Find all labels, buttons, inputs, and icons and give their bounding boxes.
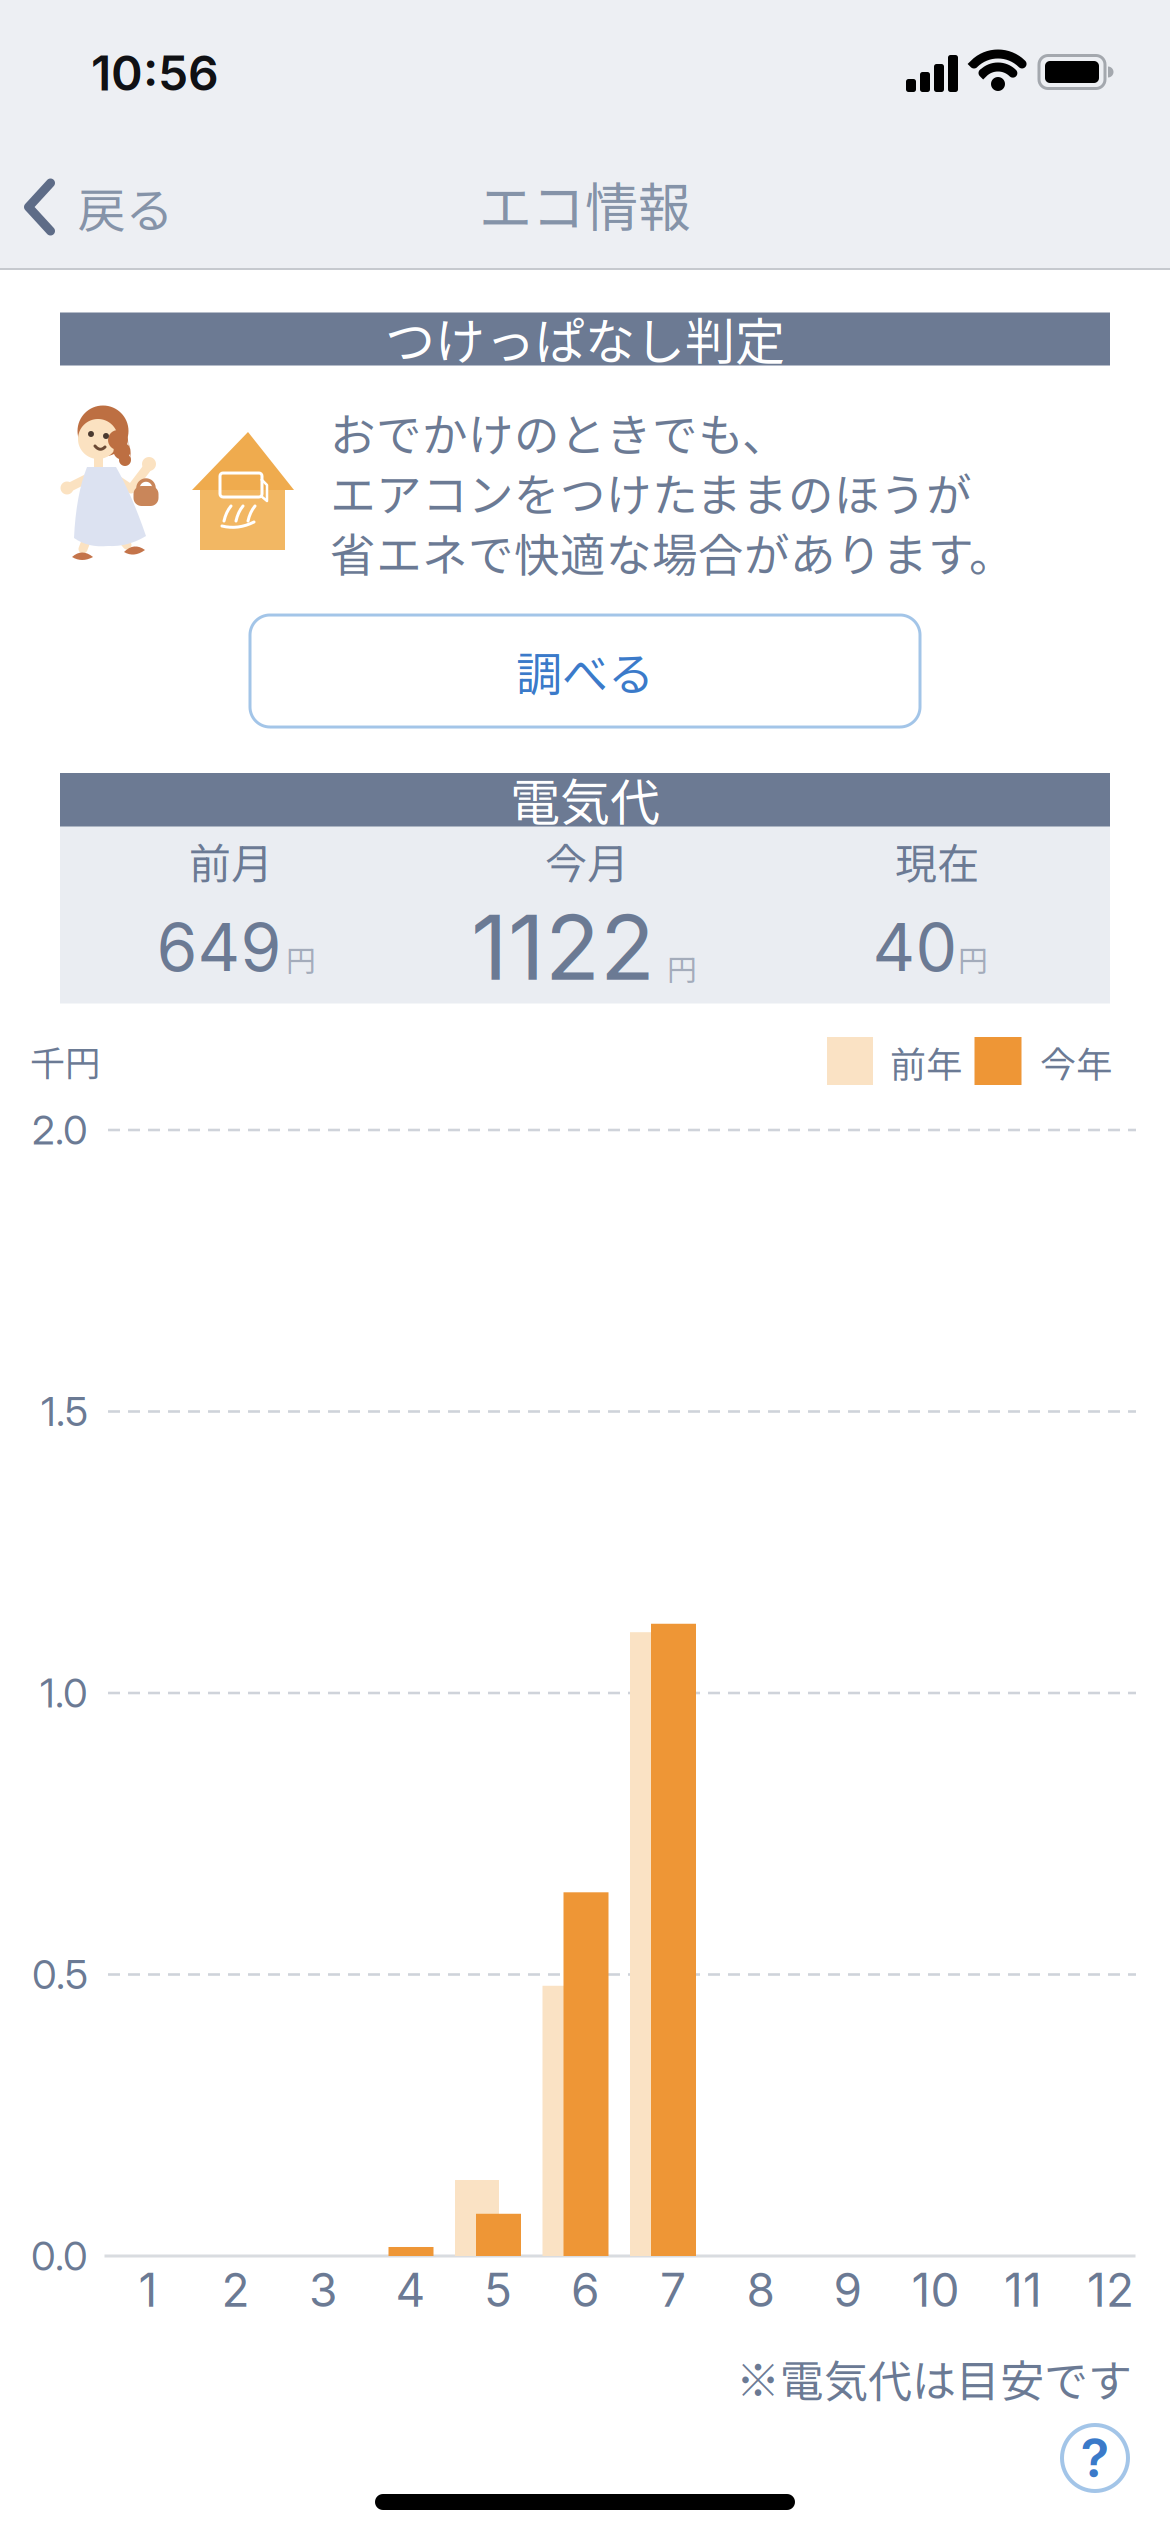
staticText: 40 [872, 907, 957, 987]
staticText: 円 [286, 937, 316, 981]
staticText: 1.5 [41, 1387, 88, 1436]
staticText: エコ情報 [479, 166, 691, 242]
staticText: 今年 [1040, 1036, 1112, 1088]
staticText: 3 [309, 2262, 337, 2318]
staticText: 10:56 [91, 44, 219, 102]
staticText: つけっぱなし判定 [385, 302, 785, 374]
staticText: 9 [833, 2262, 862, 2318]
staticText: 12 [1087, 2262, 1134, 2318]
staticText: ? [1080, 2426, 1109, 2490]
button[interactable]: ヘルプ [1062, 2425, 1128, 2491]
staticText: 10 [911, 2262, 959, 2318]
staticText: 1.0 [40, 1669, 88, 1717]
staticText: 円 [958, 937, 988, 981]
staticText: 電気代 [510, 763, 660, 835]
staticText: エアコンをつけたままのほうが [330, 459, 972, 525]
staticText: 6 [571, 2262, 600, 2318]
staticText: 1 [138, 2262, 157, 2318]
button[interactable]: 調べる [250, 615, 920, 727]
staticText: 2.0 [32, 1106, 88, 1154]
staticText: 7 [660, 2262, 686, 2318]
staticText: 8 [746, 2262, 774, 2318]
staticText: 11 [1004, 2262, 1042, 2318]
button[interactable]: 戻る [24, 172, 173, 242]
staticText: 5 [484, 2262, 512, 2318]
staticText: 0.5 [32, 1950, 88, 1999]
staticText: 前月 [189, 831, 273, 891]
staticText: 調べる [516, 638, 654, 704]
staticText: 戻る [77, 172, 173, 242]
staticText: 1122 [471, 893, 655, 1001]
staticText: 省エネで快適な場合があります。 [330, 519, 1015, 585]
staticText: 0.0 [31, 2232, 88, 2280]
staticText: 前年 [890, 1036, 962, 1088]
staticText: 円 [667, 946, 697, 990]
staticText: 649 [156, 907, 281, 987]
staticText: 今月 [545, 831, 629, 891]
staticText: ※電気代は目安です [736, 2346, 1132, 2410]
staticText: 2 [221, 2262, 249, 2318]
staticText: 現在 [895, 831, 979, 891]
staticText: おでかけのときでも、 [330, 399, 788, 465]
staticText: 4 [395, 2262, 425, 2318]
staticText: 千円 [30, 1036, 100, 1086]
